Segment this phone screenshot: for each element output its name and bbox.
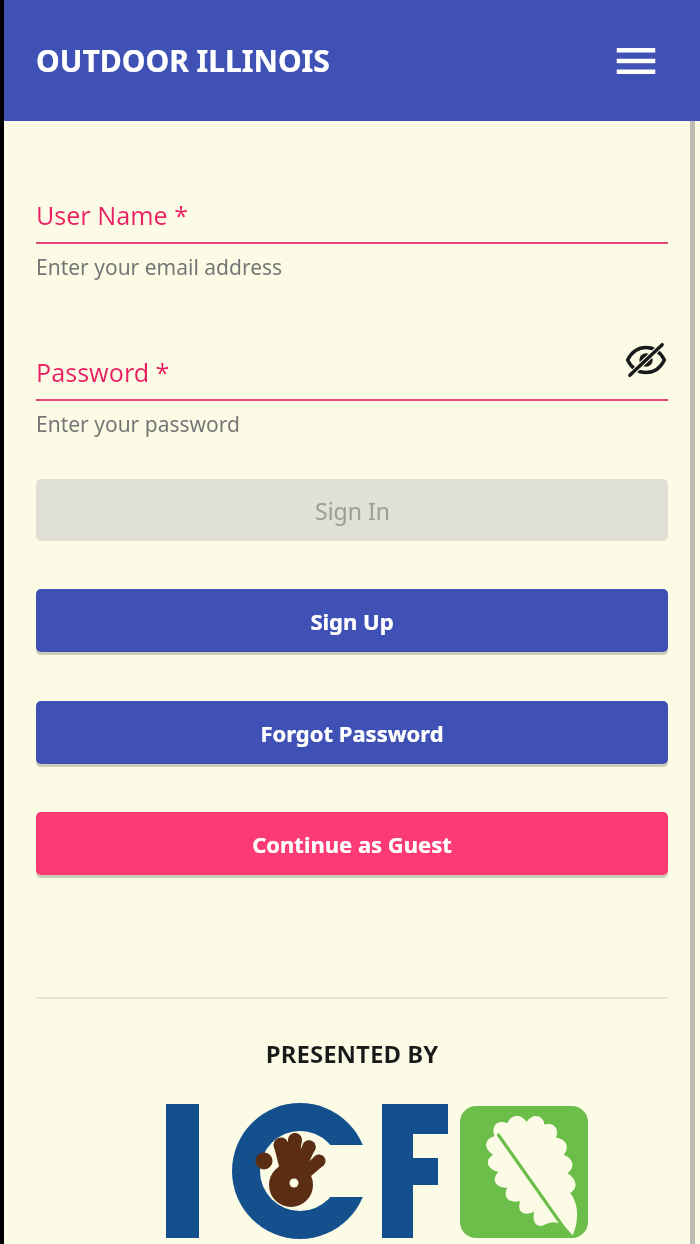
- button[interactable]: Sign Up: [36, 589, 668, 652]
- button[interactable]: Continue as Guest: [36, 812, 668, 875]
- staticText: PRESENTED BY: [36, 1037, 668, 1070]
- staticText: Enter your email address: [36, 253, 283, 282]
- staticText: Sign Up: [310, 606, 394, 636]
- button[interactable]: Forgot Password: [36, 701, 668, 764]
- button[interactable]: Show password: [624, 338, 668, 382]
- button[interactable]: Menu: [612, 37, 660, 85]
- staticText: Enter your password: [36, 410, 240, 439]
- staticText: User Name *: [36, 198, 188, 232]
- staticText: OUTDOOR ILLINOIS: [36, 40, 330, 81]
- button[interactable]: Sign In: [36, 479, 668, 541]
- staticText: Forgot Password: [260, 718, 444, 748]
- staticText: Password *: [36, 355, 170, 389]
- staticText: Sign In: [315, 495, 390, 526]
- staticText: Continue as Guest: [252, 829, 452, 859]
